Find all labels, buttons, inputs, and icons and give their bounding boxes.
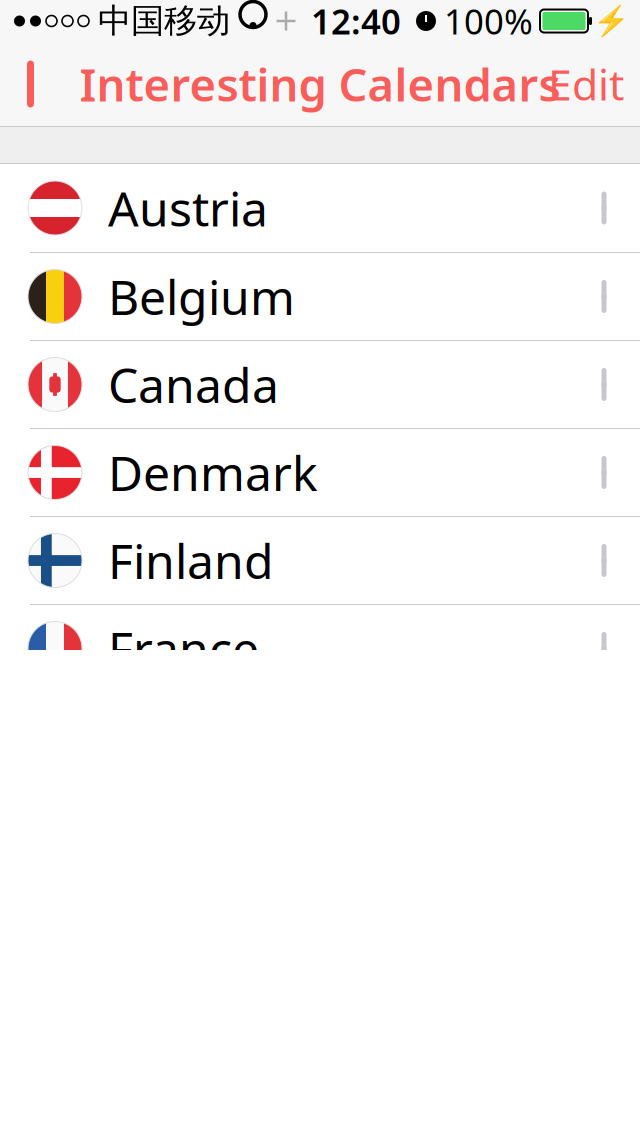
staticText: 中国移动 (98, 0, 230, 41)
button[interactable]: Back (0, 48, 62, 120)
staticText: 12:40 (311, 0, 401, 44)
button[interactable]: Denmark (0, 428, 640, 516)
button[interactable]: Canada (0, 340, 640, 428)
staticText: Interesting Calendars (79, 54, 560, 114)
button[interactable]: Belgium (0, 252, 640, 340)
staticText: Denmark (108, 441, 318, 504)
staticText: Canada (108, 353, 279, 416)
button[interactable]: Finland (0, 516, 640, 604)
staticText: ⚡ (593, 4, 630, 38)
button[interactable]: Austria (0, 164, 640, 252)
staticText: Belgium (108, 265, 295, 328)
staticText: Austria (108, 176, 268, 240)
staticText: 100% (444, 0, 533, 44)
staticText: France (108, 617, 259, 680)
button[interactable]: France (0, 604, 640, 692)
staticText: Edit (548, 56, 624, 112)
staticText: Finland (108, 529, 274, 592)
button[interactable]: Edit (532, 48, 640, 120)
